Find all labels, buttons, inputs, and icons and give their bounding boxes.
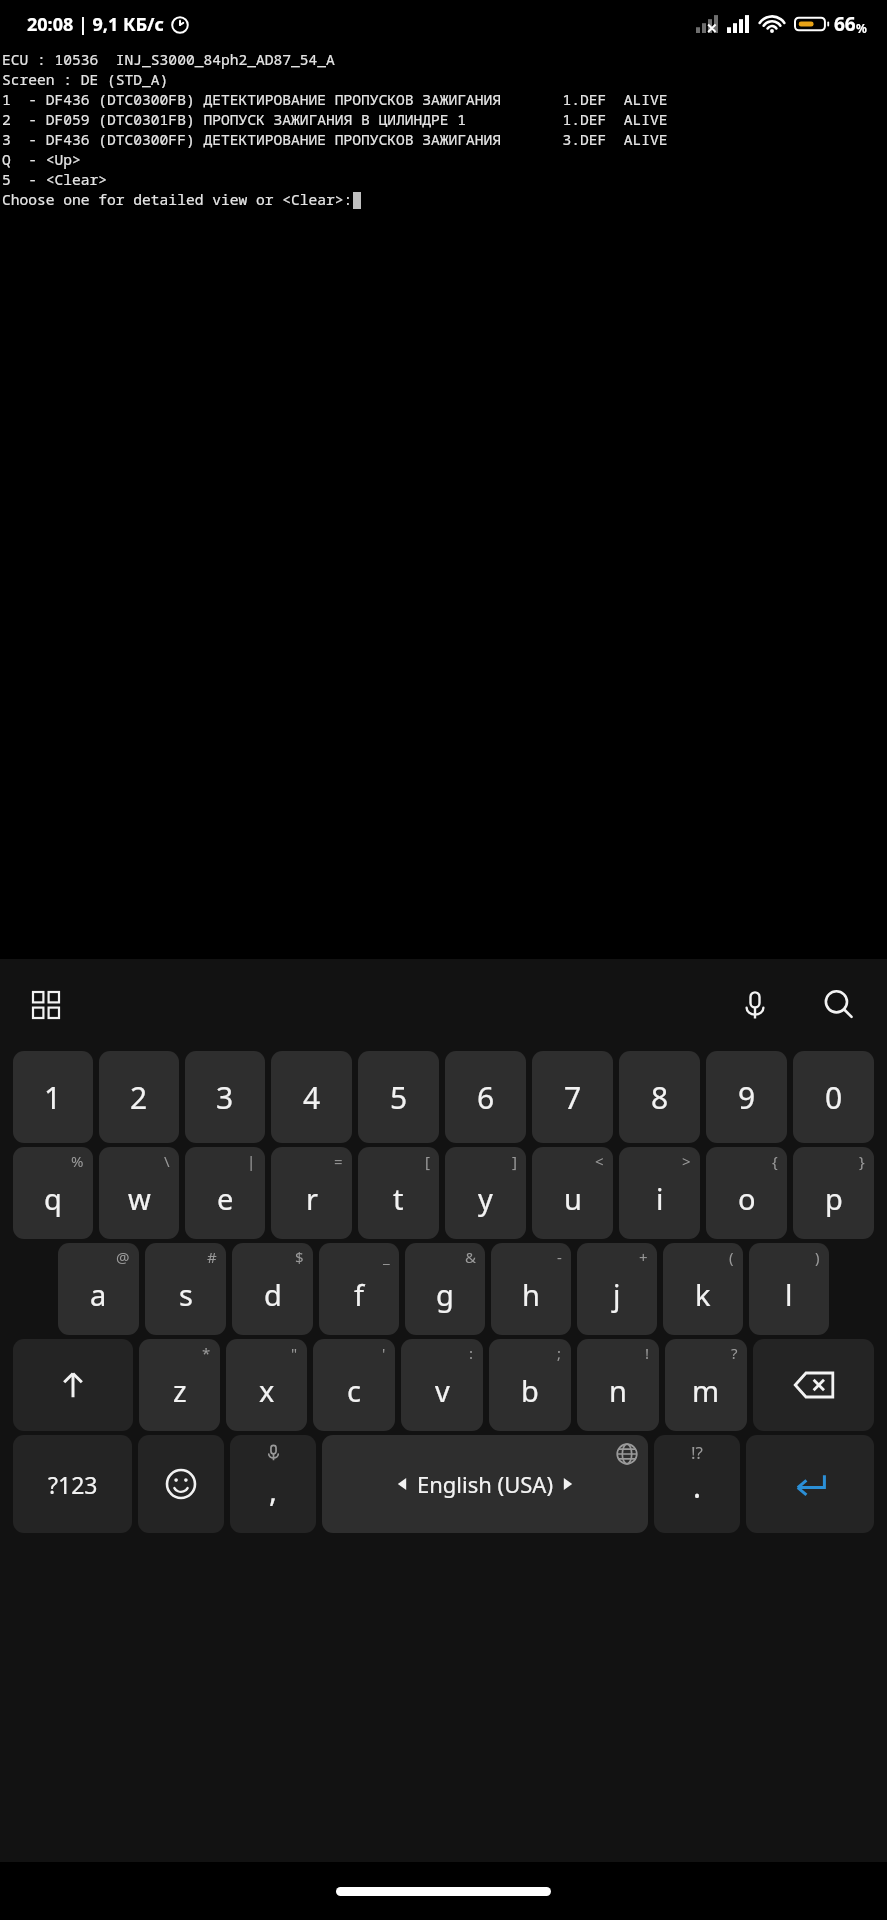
staticText: t bbox=[393, 1179, 404, 1218]
button[interactable]: ; bbox=[489, 1339, 571, 1431]
button[interactable]: English (USA) bbox=[322, 1435, 648, 1533]
staticText: k bbox=[695, 1275, 711, 1314]
button[interactable]: ?123 bbox=[13, 1435, 132, 1533]
staticText: 3 - DF436 (DTC0300FF) ДЕТЕКТИРОВАНИЕ ПРО… bbox=[2, 129, 668, 149]
staticText: + bbox=[639, 1247, 648, 1267]
staticText: f bbox=[354, 1275, 364, 1314]
staticText: | bbox=[247, 1151, 256, 1171]
staticText: @ bbox=[116, 1247, 130, 1267]
staticText: ?123 bbox=[48, 1469, 98, 1500]
button[interactable]: - bbox=[491, 1243, 571, 1335]
button[interactable]: 2 bbox=[99, 1051, 179, 1143]
staticText: Screen : DE (STD_A) bbox=[2, 69, 169, 89]
staticText: < bbox=[595, 1151, 604, 1171]
staticText: { bbox=[772, 1151, 778, 1171]
staticText: a bbox=[90, 1275, 107, 1314]
staticText: c bbox=[347, 1371, 361, 1410]
staticText: ECU : 10536 INJ_S3000_84ph2_AD87_54_A bbox=[2, 49, 335, 69]
button[interactable]: !? bbox=[654, 1435, 740, 1533]
button[interactable]: ) bbox=[749, 1243, 829, 1335]
button[interactable]: Shift bbox=[13, 1339, 133, 1431]
button[interactable]: { bbox=[706, 1147, 787, 1239]
button[interactable]: Emoji bbox=[138, 1435, 224, 1533]
button[interactable]: 5 bbox=[358, 1051, 439, 1143]
button[interactable]: ' bbox=[313, 1339, 395, 1431]
button[interactable]: " bbox=[226, 1339, 307, 1431]
staticText: y bbox=[478, 1179, 493, 1218]
staticText: = bbox=[334, 1151, 343, 1171]
staticText: p bbox=[825, 1179, 843, 1218]
button[interactable]: ? bbox=[665, 1339, 747, 1431]
staticText: 1 - DF436 (DTC0300FB) ДЕТЕКТИРОВАНИЕ ПРО… bbox=[2, 89, 668, 109]
button[interactable]: Backspace bbox=[753, 1339, 874, 1431]
button[interactable]: | bbox=[185, 1147, 265, 1239]
staticText: > bbox=[682, 1151, 691, 1171]
staticText: * bbox=[202, 1343, 211, 1363]
button[interactable]: 4 bbox=[271, 1051, 352, 1143]
staticText: $ bbox=[295, 1247, 304, 1267]
staticText: v bbox=[435, 1371, 450, 1410]
staticText: 20:08 | 9,1 КБ/с bbox=[27, 12, 164, 37]
button[interactable]: 9 bbox=[706, 1051, 787, 1143]
staticText: 5 - <Clear> bbox=[2, 169, 108, 189]
button[interactable]: Home bbox=[336, 1887, 551, 1896]
staticText: Choose one for detailed view or <Clear>: bbox=[2, 189, 353, 209]
button[interactable]: Voice input bbox=[725, 975, 785, 1035]
button[interactable]: ! bbox=[577, 1339, 659, 1431]
button[interactable]: * bbox=[139, 1339, 220, 1431]
staticText: " bbox=[291, 1343, 298, 1363]
button[interactable]: Search bbox=[809, 975, 869, 1035]
button[interactable]: $ bbox=[232, 1243, 313, 1335]
button[interactable]: ( bbox=[663, 1243, 743, 1335]
staticText: s bbox=[179, 1275, 193, 1314]
staticText: 9 bbox=[738, 1077, 756, 1118]
staticText: d bbox=[264, 1275, 282, 1314]
staticText: i bbox=[656, 1179, 664, 1218]
staticText: !? bbox=[691, 1441, 703, 1464]
button[interactable]: > bbox=[619, 1147, 700, 1239]
button[interactable]: Keyboard modes bbox=[18, 977, 74, 1033]
button[interactable]: 7 bbox=[532, 1051, 613, 1143]
staticText: English (USA) bbox=[417, 1469, 553, 1499]
button[interactable]: _ bbox=[319, 1243, 399, 1335]
button[interactable]: 6 bbox=[445, 1051, 526, 1143]
staticText: r bbox=[306, 1179, 318, 1218]
button[interactable]: ] bbox=[445, 1147, 526, 1239]
staticText: . bbox=[693, 1466, 702, 1507]
button[interactable]: % bbox=[13, 1147, 93, 1239]
staticText: ] bbox=[512, 1151, 517, 1171]
button[interactable]: 0 bbox=[793, 1051, 874, 1143]
staticText: 6 bbox=[477, 1077, 495, 1118]
staticText: , bbox=[269, 1470, 278, 1511]
staticText: % bbox=[71, 1151, 84, 1171]
button[interactable]: : bbox=[401, 1339, 483, 1431]
staticText: _ bbox=[383, 1247, 390, 1267]
staticText: q bbox=[44, 1179, 62, 1218]
staticText: Q - <Up> bbox=[2, 149, 81, 169]
button[interactable]: # bbox=[145, 1243, 226, 1335]
staticText: 7 bbox=[564, 1077, 582, 1118]
button[interactable]: = bbox=[271, 1147, 352, 1239]
staticText: ( bbox=[729, 1247, 734, 1267]
button[interactable]: @ bbox=[58, 1243, 139, 1335]
staticText: ? bbox=[731, 1343, 738, 1363]
button[interactable]: 8 bbox=[619, 1051, 700, 1143]
button[interactable]: Enter bbox=[746, 1435, 874, 1533]
button[interactable]: + bbox=[577, 1243, 657, 1335]
button[interactable]: 3 bbox=[185, 1051, 265, 1143]
button[interactable]: } bbox=[793, 1147, 874, 1239]
staticText: 1 bbox=[44, 1077, 62, 1118]
button[interactable]: 1 bbox=[13, 1051, 93, 1143]
staticText: 2 - DF059 (DTC0301FB) ПРОПУСК ЗАЖИГАНИЯ … bbox=[2, 109, 668, 129]
staticText: z bbox=[173, 1371, 187, 1410]
staticText: 3 bbox=[216, 1077, 234, 1118]
button[interactable]: & bbox=[405, 1243, 485, 1335]
staticText: [ bbox=[425, 1151, 430, 1171]
button[interactable]: < bbox=[532, 1147, 613, 1239]
button[interactable]: [ bbox=[358, 1147, 439, 1239]
button[interactable]: \ bbox=[99, 1147, 179, 1239]
staticText: \ bbox=[164, 1151, 170, 1171]
button[interactable]: , bbox=[230, 1435, 316, 1533]
staticText: & bbox=[465, 1247, 476, 1267]
staticText: ; bbox=[557, 1343, 562, 1363]
